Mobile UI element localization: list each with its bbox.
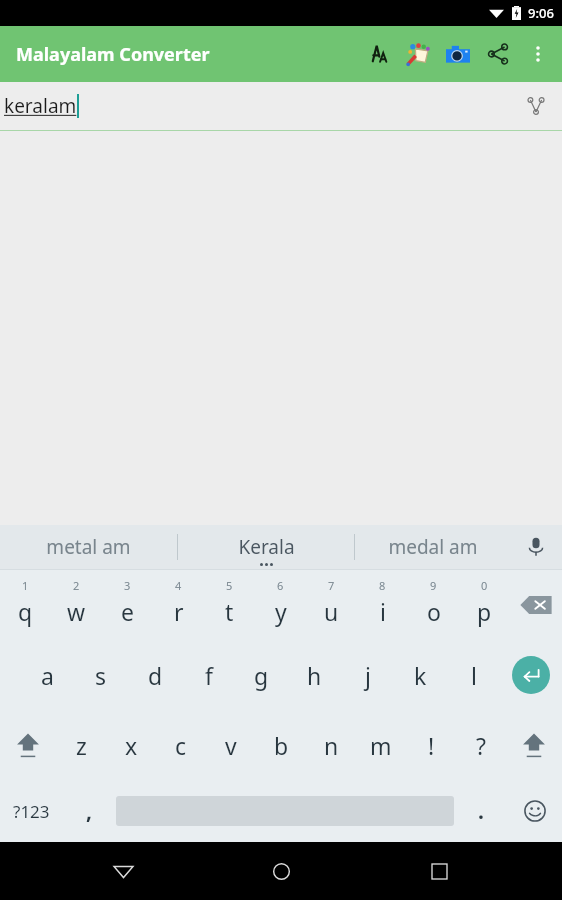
- staticText: c: [175, 730, 187, 761]
- button[interactable]: metal am: [0, 525, 177, 569]
- staticText: 9: [430, 578, 437, 593]
- staticText: 2: [73, 578, 80, 593]
- staticText: a: [41, 660, 54, 691]
- staticText: keralam: [4, 93, 77, 119]
- button[interactable]: x: [106, 710, 156, 780]
- button[interactable]: ,: [62, 780, 116, 842]
- button[interactable]: n: [306, 710, 356, 780]
- staticText: w: [67, 596, 86, 627]
- staticText: 6: [277, 578, 284, 593]
- button[interactable]: 9: [408, 570, 459, 640]
- button[interactable]: l: [447, 640, 500, 710]
- button[interactable]: Transliterate options: [516, 86, 556, 126]
- button[interactable]: f: [182, 640, 235, 710]
- button[interactable]: Camera: [438, 30, 478, 78]
- staticText: 9:06: [528, 4, 554, 22]
- button[interactable]: h: [288, 640, 341, 710]
- staticText: 8: [379, 578, 386, 593]
- staticText: z: [76, 730, 87, 761]
- button[interactable]: 3: [102, 570, 153, 640]
- button[interactable]: 4: [153, 570, 204, 640]
- staticText: o: [427, 596, 441, 627]
- button[interactable]: j: [341, 640, 394, 710]
- staticText: medal am: [388, 534, 478, 560]
- staticText: l: [471, 660, 477, 691]
- button[interactable]: v: [206, 710, 256, 780]
- staticText: e: [121, 596, 134, 627]
- staticText: y: [275, 596, 287, 627]
- button[interactable]: 0: [459, 570, 510, 640]
- staticText: !: [428, 730, 435, 761]
- staticText: Malayalam Converter: [16, 42, 210, 67]
- button[interactable]: c: [156, 710, 206, 780]
- staticText: i: [380, 596, 386, 627]
- staticText: ,: [86, 797, 92, 826]
- staticText: k: [414, 660, 427, 691]
- button[interactable]: medal am: [355, 525, 510, 569]
- staticText: h: [307, 660, 322, 691]
- button[interactable]: Kerala: [178, 525, 354, 569]
- button[interactable]: !: [406, 710, 456, 780]
- staticText: q: [18, 596, 33, 627]
- button[interactable]: d: [128, 640, 182, 710]
- staticText: p: [477, 596, 492, 627]
- button[interactable]: k: [394, 640, 447, 710]
- button[interactable]: Home: [246, 842, 316, 900]
- staticText: Kerala: [238, 534, 295, 560]
- staticText: 3: [124, 578, 131, 593]
- button[interactable]: 6: [255, 570, 306, 640]
- staticText: b: [274, 730, 289, 761]
- button[interactable]: 1: [0, 570, 51, 640]
- staticText: t: [225, 596, 234, 627]
- button[interactable]: Emoji: [508, 780, 562, 842]
- staticText: 7: [328, 578, 335, 593]
- button[interactable]: a: [20, 640, 74, 710]
- button[interactable]: b: [256, 710, 306, 780]
- staticText: 1: [22, 578, 29, 593]
- staticText: metal am: [46, 534, 131, 560]
- button[interactable]: More options: [518, 30, 558, 78]
- staticText: f: [205, 660, 213, 691]
- button[interactable]: 5: [204, 570, 255, 640]
- staticText: 5: [226, 578, 233, 593]
- button[interactable]: .: [454, 780, 508, 842]
- button[interactable]: ?: [456, 710, 506, 780]
- staticText: n: [324, 730, 339, 761]
- staticText: r: [174, 596, 184, 627]
- staticText: j: [365, 660, 371, 691]
- staticText: 4: [175, 578, 182, 593]
- staticText: ?: [476, 730, 486, 761]
- button[interactable]: Share: [478, 30, 518, 78]
- button[interactable]: Font size: [358, 30, 398, 78]
- button[interactable]: m: [356, 710, 406, 780]
- button[interactable]: Back: [88, 842, 158, 900]
- staticText: u: [324, 596, 339, 627]
- staticText: ?123: [13, 800, 50, 823]
- button[interactable]: Voice input: [510, 525, 562, 569]
- staticText: .: [478, 797, 484, 826]
- button[interactable]: s: [74, 640, 128, 710]
- button[interactable]: ?123: [0, 780, 62, 842]
- button[interactable]: 7: [306, 570, 357, 640]
- staticText: m: [370, 730, 392, 761]
- staticText: v: [225, 730, 237, 761]
- staticText: d: [148, 660, 163, 691]
- staticText: 0: [481, 578, 488, 593]
- button[interactable]: z: [56, 710, 106, 780]
- button[interactable]: 8: [357, 570, 408, 640]
- button[interactable]: Shift: [506, 710, 562, 780]
- staticText: g: [254, 660, 269, 691]
- staticText: s: [95, 660, 107, 691]
- button[interactable]: Backspace: [510, 570, 562, 640]
- staticText: x: [125, 730, 138, 761]
- button[interactable]: Theme colour: [398, 30, 438, 78]
- button[interactable]: Recent apps: [404, 842, 474, 900]
- button[interactable]: 2: [51, 570, 102, 640]
- button[interactable]: Enter: [500, 640, 562, 710]
- button[interactable]: Shift: [0, 710, 56, 780]
- button[interactable]: g: [235, 640, 288, 710]
